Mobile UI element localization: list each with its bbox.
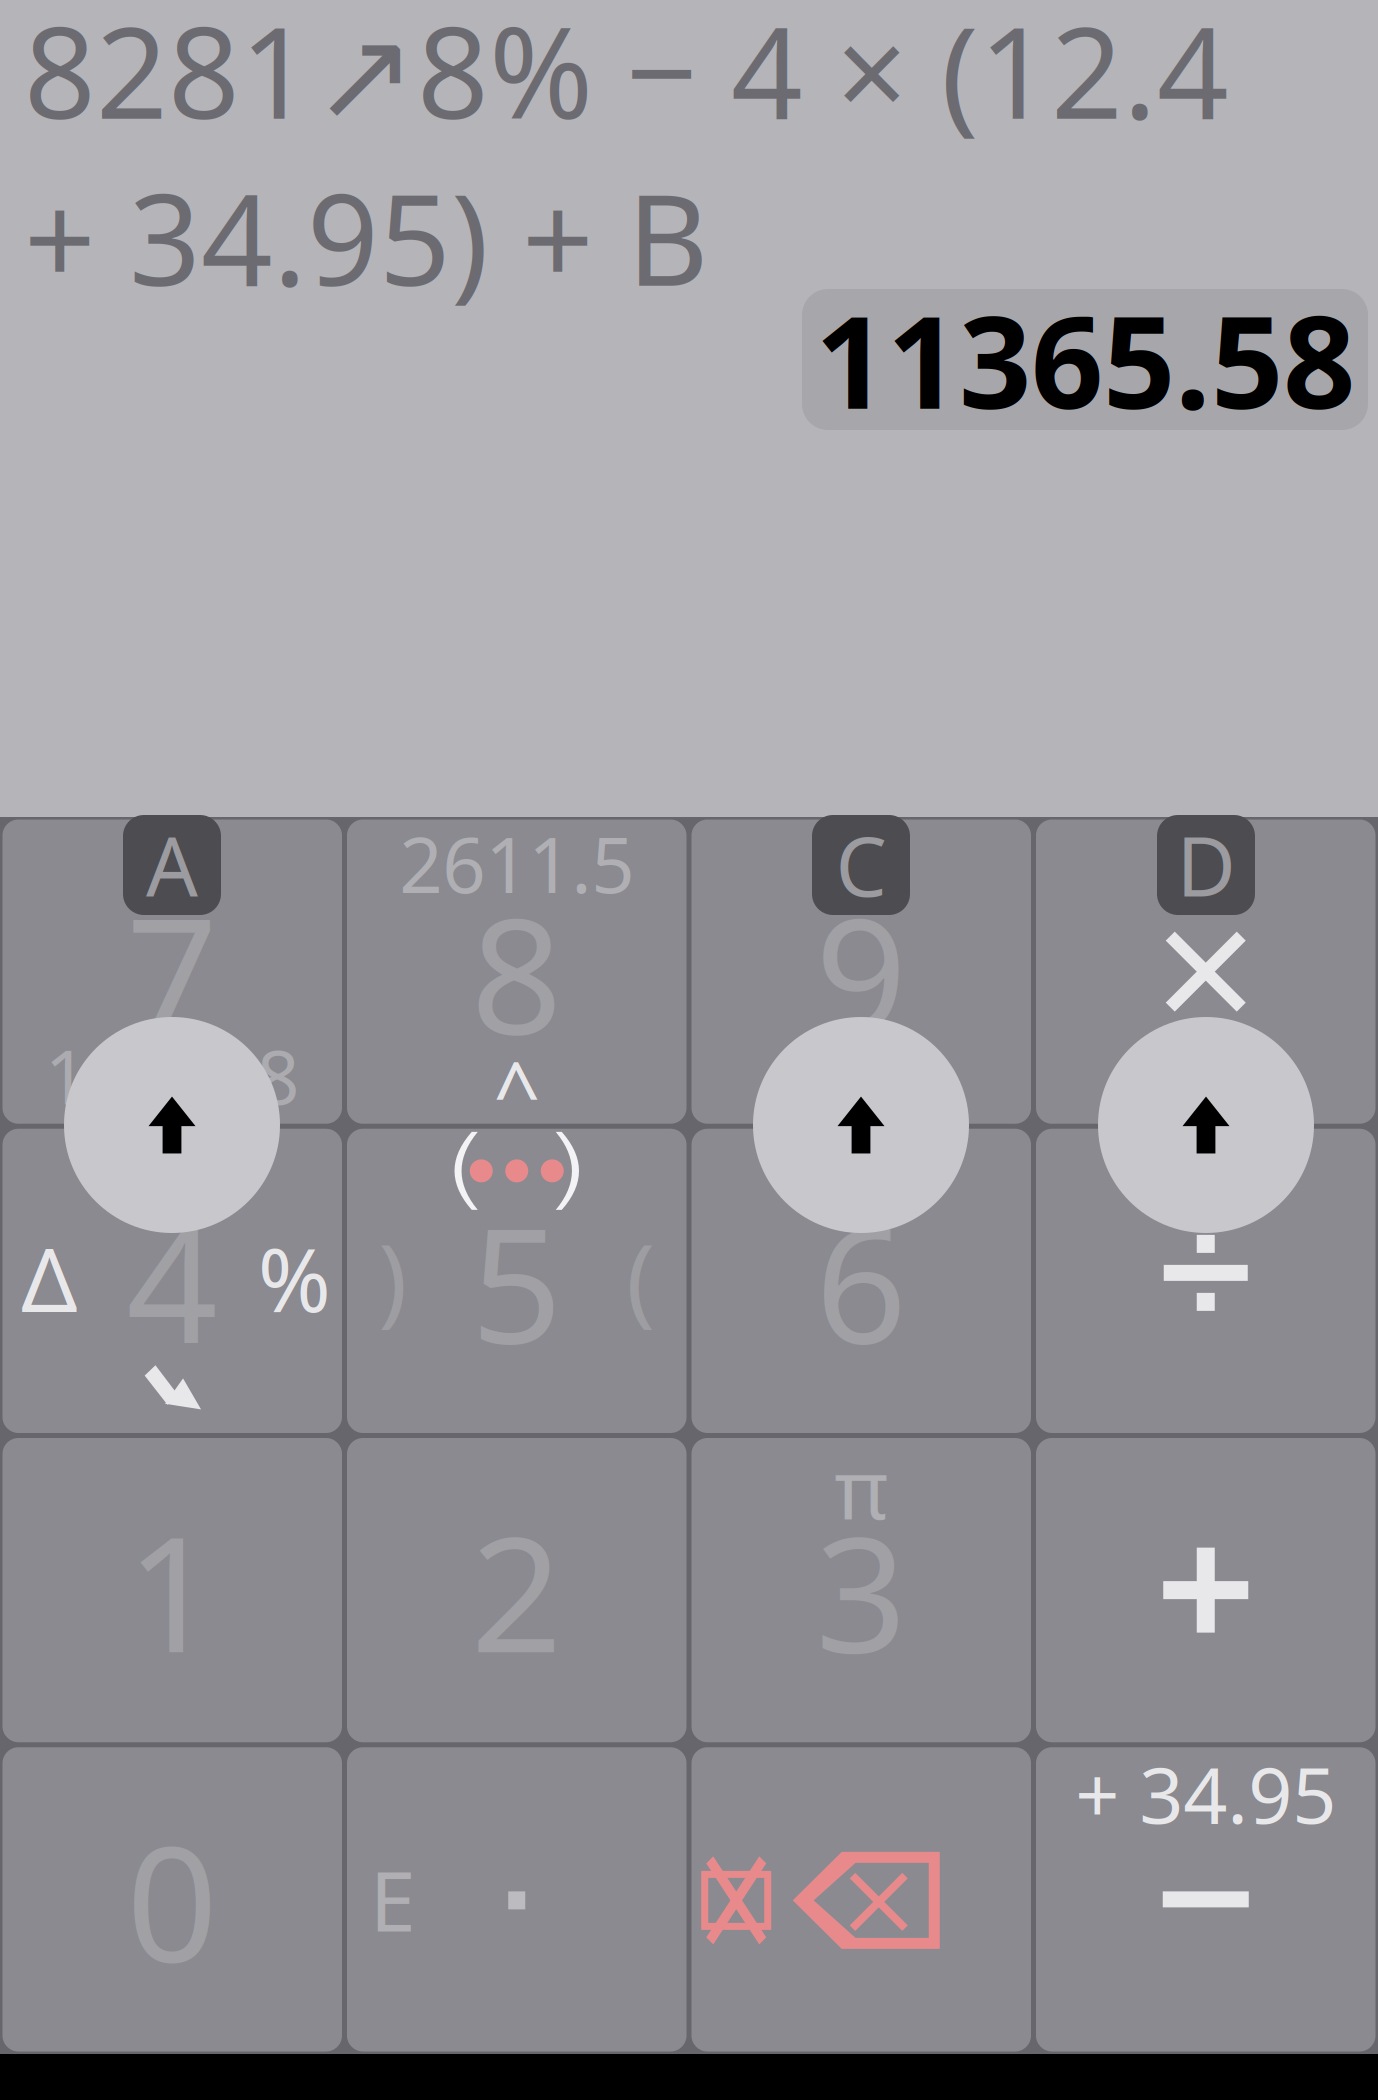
button[interactable]: 2 <box>347 1438 686 1742</box>
staticText: π <box>834 1432 888 1542</box>
button[interactable]: divide <box>1036 1129 1375 1433</box>
staticText: 11365.58 <box>815 275 1355 444</box>
button[interactable]: 1 <box>2 1438 342 1742</box>
button[interactable]: minus <box>1036 1747 1375 2051</box>
staticText: 8 <box>471 865 563 1078</box>
button[interactable]: delete <box>691 1747 1031 2051</box>
staticText: ^ <box>493 1035 540 1144</box>
staticText: C <box>835 811 886 919</box>
staticText: 8281↗8% − 4 × (12.4 <box>24 0 1229 153</box>
staticText: 6 <box>815 1175 907 1387</box>
button[interactable]: 6 <box>691 1129 1031 1433</box>
staticText: 3 <box>815 1484 907 1696</box>
button[interactable]: multiply <box>1036 819 1375 1124</box>
staticText: ( <box>626 1214 655 1342</box>
staticText: 7 <box>126 865 218 1078</box>
staticText: 0 <box>126 1793 218 2006</box>
staticText: 4 <box>126 1175 218 1387</box>
staticText: 2 <box>471 1484 563 1696</box>
staticText: + 34.95 <box>1075 1742 1336 1845</box>
staticText: Δ <box>21 1219 77 1336</box>
staticText: A <box>146 811 198 919</box>
staticText: 8 <box>257 1026 300 1125</box>
button[interactable]: decimal point <box>347 1747 686 2051</box>
staticText: 1 <box>45 1026 88 1125</box>
staticText: 5 <box>471 1175 563 1387</box>
staticText: 1 <box>126 1484 218 1696</box>
button[interactable]: 0 <box>2 1747 342 2051</box>
button[interactable]: 4 <box>2 1129 342 1433</box>
staticText: % <box>258 1219 331 1336</box>
staticText: + 34.95) + B <box>24 154 708 320</box>
staticText: 2611.5 <box>399 813 634 914</box>
staticText: ) <box>378 1214 407 1342</box>
button[interactable]: 3 <box>691 1438 1031 1742</box>
staticText: 9 <box>815 865 907 1078</box>
button[interactable]: 8 <box>347 819 686 1124</box>
staticText: E <box>370 1844 416 1954</box>
button[interactable]: 5 <box>347 1129 686 1433</box>
staticText: D <box>1176 811 1235 919</box>
button[interactable]: plus <box>1036 1438 1375 1742</box>
button[interactable]: 9 <box>691 819 1031 1124</box>
button[interactable]: 7 <box>2 819 342 1124</box>
